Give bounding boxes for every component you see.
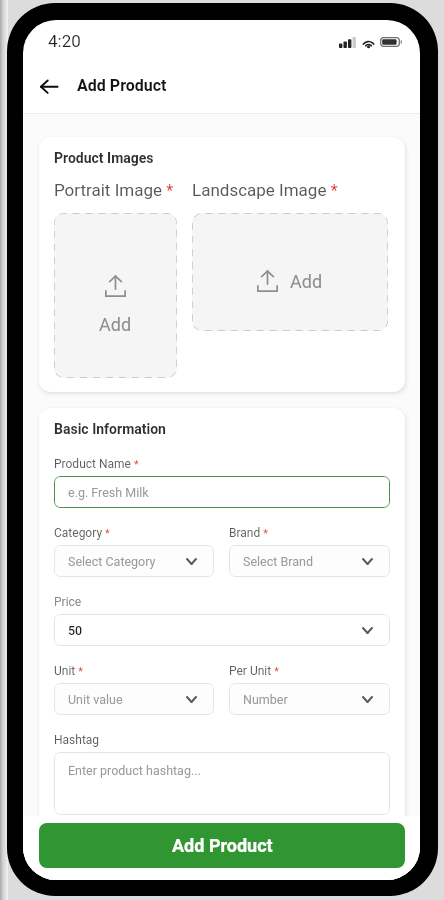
button[interactable]: Select Category — [54, 545, 214, 577]
staticText: 50 — [68, 623, 83, 638]
staticText: Unit value — [68, 692, 123, 707]
button[interactable]: Back — [23, 69, 59, 105]
staticText: Product Images — [54, 150, 154, 166]
staticText: Add — [290, 271, 323, 292]
staticText: Add Product — [77, 76, 167, 95]
staticText: Unit * — [54, 664, 83, 678]
staticText: Portrait Image * — [54, 180, 174, 200]
button[interactable]: Enter product hashtag... — [54, 752, 390, 815]
staticText: Select Brand — [243, 554, 313, 569]
staticText: Basic Information — [54, 421, 166, 437]
staticText: Hashtag — [54, 733, 100, 747]
staticText: Category * — [54, 526, 110, 540]
button[interactable]: Add image — [192, 213, 388, 331]
button[interactable]: Select Brand — [229, 545, 390, 577]
staticText: Price — [54, 595, 82, 609]
staticText: Add Product — [172, 835, 273, 856]
button[interactable]: e.g. Fresh Milk — [54, 476, 390, 508]
staticText: Landscape Image * — [192, 180, 338, 200]
button[interactable]: Add Product — [39, 823, 405, 868]
staticText: e.g. Fresh Milk — [68, 485, 149, 500]
button[interactable]: Add image — [54, 213, 177, 378]
staticText: Add — [99, 314, 132, 335]
staticText: Product Name * — [54, 457, 139, 471]
button[interactable]: Number — [229, 683, 390, 715]
staticText: Select Category — [68, 554, 156, 569]
staticText: Per Unit * — [229, 664, 279, 678]
button[interactable]: 50 — [54, 614, 390, 646]
staticText: 4:20 — [48, 31, 81, 51]
staticText: Brand * — [229, 526, 268, 540]
staticText: Enter product hashtag... — [68, 763, 201, 778]
button[interactable]: Unit value — [54, 683, 214, 715]
staticText: Number — [243, 692, 288, 707]
